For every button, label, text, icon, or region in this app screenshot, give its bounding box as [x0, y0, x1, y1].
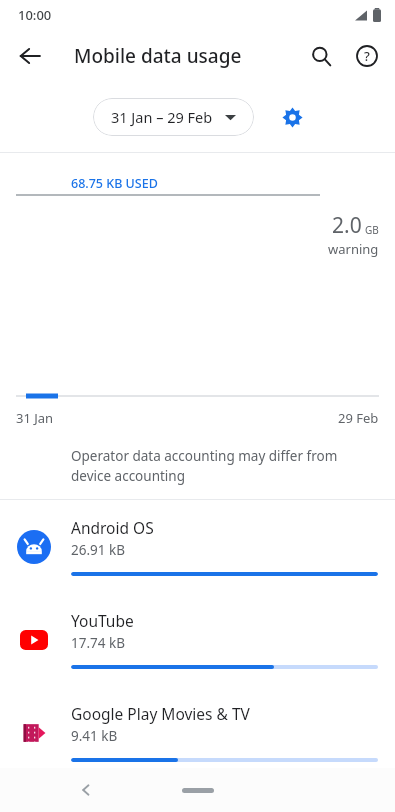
staticText: 26.91 kB — [71, 541, 125, 559]
staticText: Operator data accounting may differ from… — [71, 447, 355, 485]
staticText: 31 Jan — [16, 409, 54, 427]
staticText: 31 Jan – 29 Feb — [111, 107, 213, 127]
staticText: ? — [364, 47, 370, 65]
staticText: 10:00 — [18, 6, 52, 24]
staticText: Android OS — [71, 517, 154, 538]
button[interactable]: Back — [68, 772, 104, 808]
staticText: Google Play Movies & TV — [71, 703, 250, 724]
button[interactable]: Search — [299, 34, 343, 78]
staticText: 29 Feb — [338, 409, 379, 427]
staticText: 68.75 KB USED — [71, 175, 158, 192]
staticText: 9.41 kB — [71, 727, 118, 745]
staticText: 2.0 — [332, 211, 362, 240]
button[interactable]: Data warning settings — [272, 97, 312, 137]
staticText: 17.74 kB — [71, 634, 125, 652]
staticText: warning — [328, 240, 379, 258]
staticText: GB — [365, 223, 379, 237]
button[interactable]: YouTube — [0, 593, 395, 686]
button[interactable]: Help — [345, 34, 389, 78]
button[interactable]: Android OS — [0, 500, 395, 593]
staticText: YouTube — [71, 610, 134, 631]
button[interactable]: Back — [8, 34, 52, 78]
button[interactable]: Home — [182, 788, 214, 793]
button[interactable]: 31 Jan – 29 Feb — [93, 98, 254, 136]
staticText: Mobile data usage — [74, 43, 242, 69]
button[interactable]: Google Play Movies & TV — [0, 686, 395, 779]
